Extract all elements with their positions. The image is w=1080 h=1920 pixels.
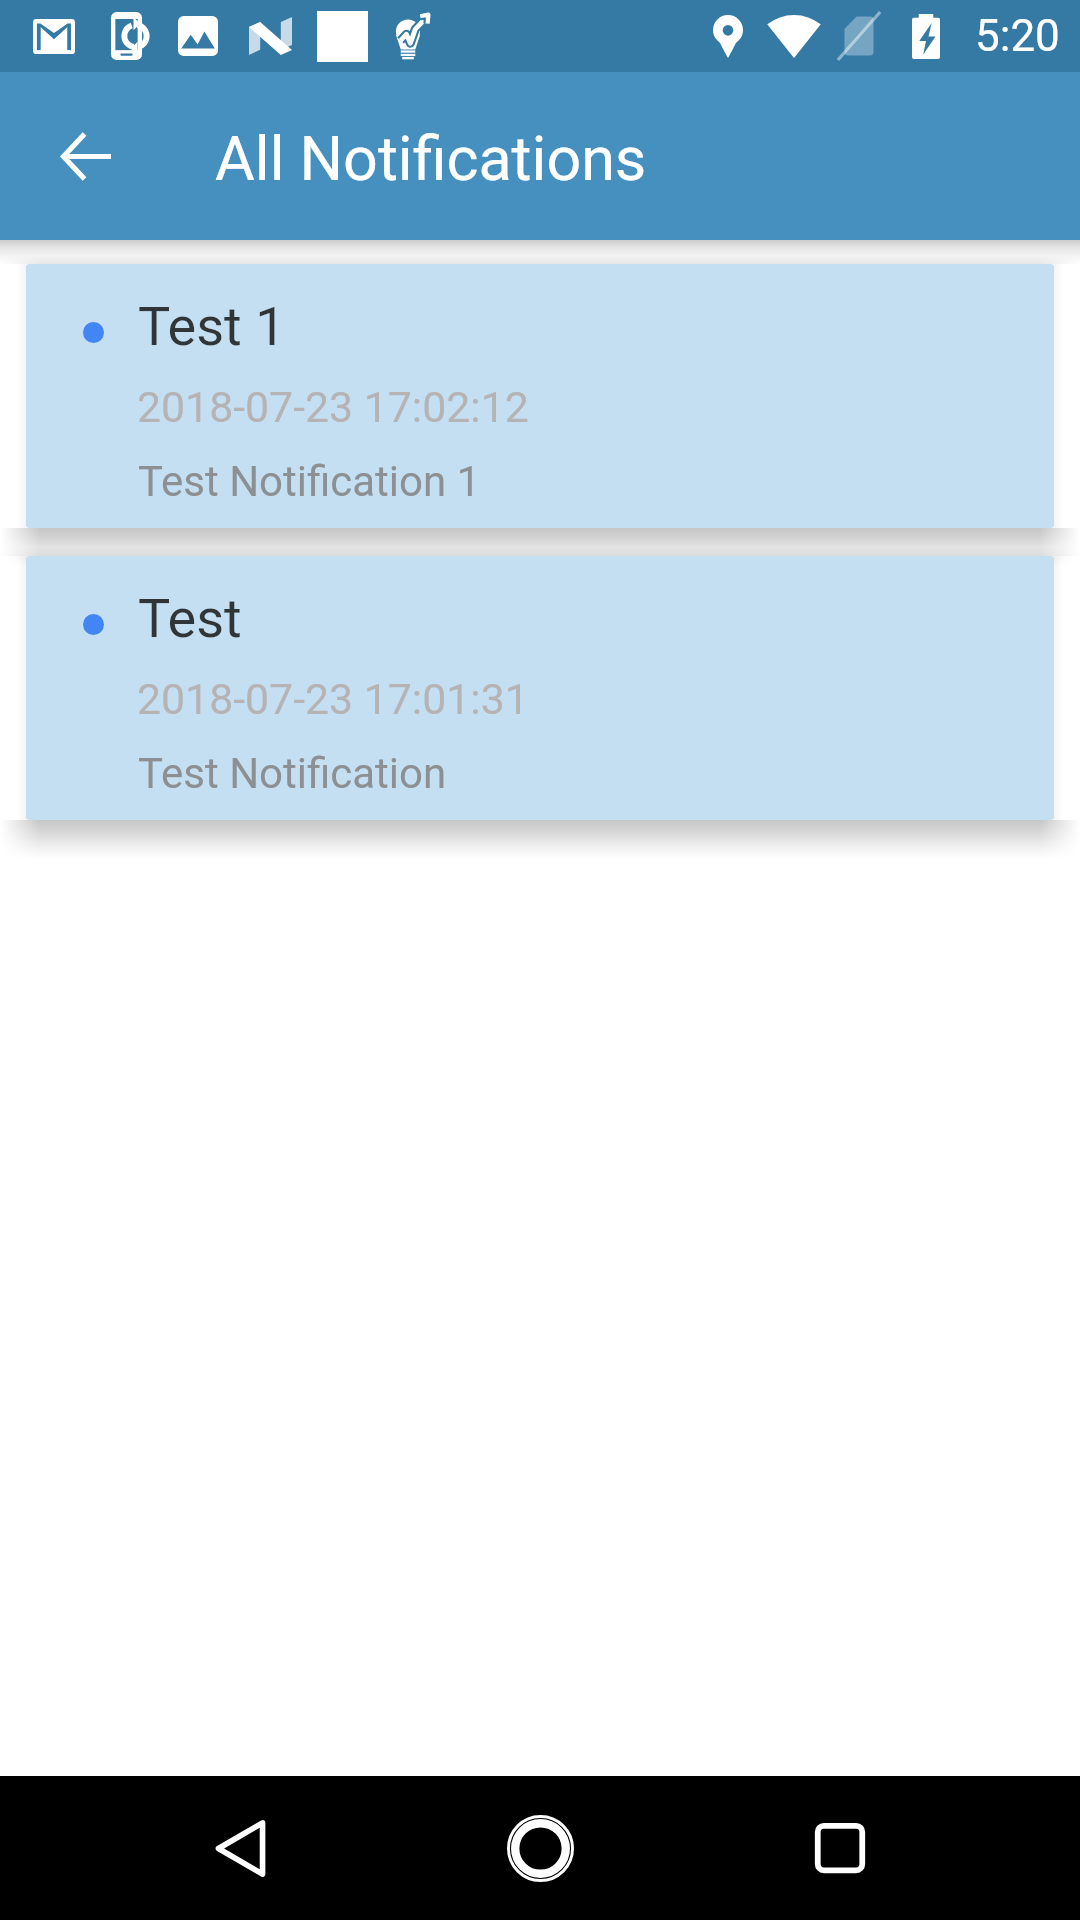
staticText: Test Notification 1	[138, 457, 481, 506]
staticText: 2018-07-23 17:01:31	[137, 674, 529, 724]
button[interactable]: Back	[168, 1776, 312, 1920]
button[interactable]: Test 1	[26, 264, 1054, 528]
button[interactable]: Back	[36, 106, 136, 206]
staticText: 5:20	[975, 10, 1060, 62]
staticText: Test Notification	[138, 749, 447, 798]
staticText: 2018-07-23 17:02:12	[137, 382, 529, 432]
staticText: Test	[138, 587, 242, 650]
button[interactable]: Home	[468, 1776, 612, 1920]
staticText: All Notifications	[215, 123, 647, 194]
staticText: Test 1	[138, 295, 286, 358]
button[interactable]: Recent apps	[768, 1776, 912, 1920]
button[interactable]: Test	[26, 556, 1054, 820]
